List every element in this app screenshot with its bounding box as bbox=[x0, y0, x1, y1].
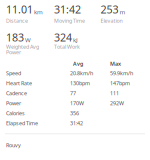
staticText: 31:42 bbox=[54, 2, 81, 16]
staticText: 77 bbox=[70, 89, 76, 97]
staticText: 170W bbox=[70, 99, 84, 107]
staticText: Power bbox=[6, 99, 21, 107]
staticText: 324 bbox=[54, 30, 72, 44]
staticText: Cadence bbox=[6, 89, 27, 97]
staticText: Moving Time bbox=[54, 17, 85, 24]
staticText: W bbox=[25, 36, 31, 44]
staticText: 20.8km/h bbox=[70, 69, 93, 77]
staticText: km bbox=[34, 8, 43, 16]
staticText: 253 bbox=[100, 2, 118, 16]
staticText: kJ bbox=[73, 36, 78, 44]
staticText: Elevation bbox=[100, 17, 122, 24]
staticText: Heart Rate bbox=[6, 79, 32, 87]
staticText: 292W bbox=[110, 99, 124, 107]
staticText: Distance bbox=[6, 17, 28, 24]
staticText: Calories bbox=[6, 109, 25, 117]
staticText: Speed bbox=[6, 69, 21, 77]
staticText: Power bbox=[6, 48, 21, 56]
staticText: 183 bbox=[6, 30, 24, 44]
staticText: 11.01 bbox=[6, 2, 33, 16]
staticText: Elapsed Time bbox=[6, 119, 38, 127]
staticText: 59.9km/h bbox=[110, 69, 133, 77]
staticText: Avg bbox=[73, 60, 83, 67]
staticText: 356 bbox=[70, 109, 79, 117]
staticText: 111 bbox=[110, 89, 119, 97]
staticText: Weighted Avg bbox=[6, 43, 39, 50]
staticText: 130bpm bbox=[70, 79, 90, 87]
staticText: 147bpm bbox=[110, 79, 130, 87]
staticText: m bbox=[119, 8, 125, 16]
staticText: Max bbox=[110, 60, 121, 67]
staticText: Total Work bbox=[54, 43, 80, 50]
staticText: 31:42 bbox=[70, 119, 83, 127]
staticText: Rouvy bbox=[6, 141, 21, 149]
